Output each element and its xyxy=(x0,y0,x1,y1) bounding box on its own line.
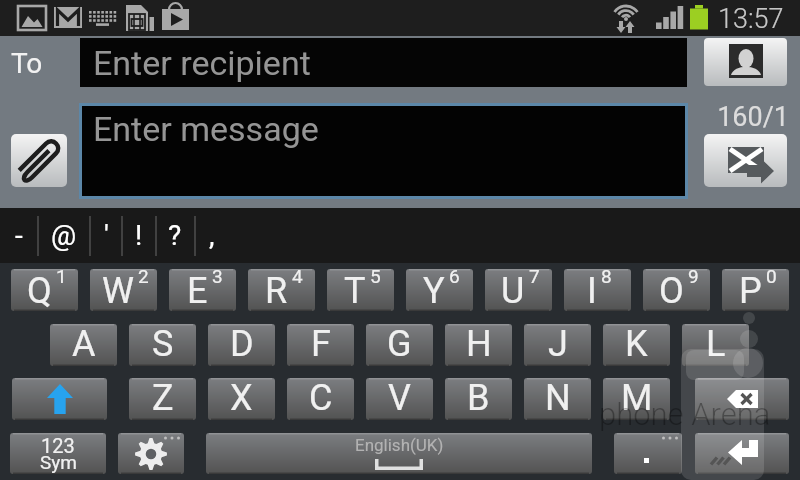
staticText: 0 xyxy=(766,269,777,287)
staticText: phone Arena xyxy=(599,396,771,432)
button[interactable]: Send message xyxy=(704,134,787,187)
button[interactable]: @ xyxy=(48,208,80,263)
button[interactable]: S xyxy=(129,324,196,366)
staticText: D xyxy=(230,324,254,365)
button[interactable]: Pick contact xyxy=(704,38,787,86)
staticText: 3 xyxy=(212,269,223,287)
staticText: 5 xyxy=(370,269,381,287)
staticText: W xyxy=(102,270,134,311)
staticText: P xyxy=(739,270,762,311)
staticText: Enter message xyxy=(93,109,319,149)
staticText: L xyxy=(706,324,726,365)
button[interactable]: W xyxy=(90,269,157,311)
button[interactable]: Z xyxy=(129,378,196,420)
staticText: 7 xyxy=(529,269,540,287)
staticText: Z xyxy=(152,378,174,419)
button[interactable]: Settings xyxy=(118,433,184,474)
staticText: U xyxy=(501,270,525,311)
button[interactable]: Backspace xyxy=(695,378,789,420)
button[interactable]: Attach xyxy=(11,134,67,187)
staticText: J xyxy=(548,324,568,365)
button[interactable]: A xyxy=(50,324,117,366)
staticText: B xyxy=(467,378,490,419)
staticText: R xyxy=(265,270,288,311)
staticText: ! xyxy=(135,219,143,252)
staticText: S xyxy=(152,324,174,365)
button[interactable]: J xyxy=(524,324,591,366)
button[interactable]: L xyxy=(682,324,749,366)
button[interactable]: R xyxy=(248,269,315,311)
staticText: 6 xyxy=(449,269,460,287)
staticText: 123 xyxy=(41,434,75,457)
button[interactable]: Symbols xyxy=(10,433,106,474)
staticText: ' xyxy=(104,219,109,252)
staticText: O xyxy=(659,270,684,311)
button[interactable]: Enter message xyxy=(82,106,685,196)
staticText: 8 xyxy=(601,269,612,287)
staticText: K xyxy=(625,324,648,365)
button[interactable]: K xyxy=(603,324,670,366)
staticText: English(UK) xyxy=(355,435,444,455)
button[interactable]: E xyxy=(169,269,236,311)
staticText: H xyxy=(466,324,492,365)
staticText: @ xyxy=(51,219,77,252)
staticText: Enter recipient xyxy=(93,43,311,83)
button[interactable]: U xyxy=(485,269,552,311)
staticText: E xyxy=(187,270,208,311)
staticText: M xyxy=(621,378,653,419)
staticText: I xyxy=(587,270,597,311)
staticText: Q xyxy=(27,270,52,311)
staticText: 4 xyxy=(292,269,303,287)
staticText: 13:57 xyxy=(718,3,784,35)
button[interactable]: H xyxy=(445,324,512,366)
button[interactable]: ' xyxy=(90,208,122,263)
button[interactable]: ! xyxy=(123,208,155,263)
button[interactable]: G xyxy=(366,324,433,366)
button[interactable]: B xyxy=(445,378,512,420)
button[interactable]: , xyxy=(196,208,228,263)
staticText: 9 xyxy=(688,269,699,287)
button[interactable]: I xyxy=(564,269,631,311)
button[interactable]: P xyxy=(722,269,789,311)
staticText: 1 xyxy=(56,269,67,287)
button[interactable]: - xyxy=(3,208,35,263)
button[interactable]: Enter xyxy=(695,433,789,474)
button[interactable]: Space xyxy=(206,433,592,474)
button[interactable]: Q xyxy=(11,269,78,311)
staticText: A xyxy=(72,324,96,365)
button[interactable]: V xyxy=(366,378,433,420)
staticText: X xyxy=(230,378,253,419)
staticText: N xyxy=(545,378,571,419)
button[interactable]: F xyxy=(287,324,354,366)
staticText: G xyxy=(387,324,412,365)
button[interactable]: Y xyxy=(406,269,473,311)
staticText: 160/1 xyxy=(690,101,789,133)
button[interactable]: Shift xyxy=(12,378,107,420)
button[interactable]: ? xyxy=(159,208,191,263)
staticText: C xyxy=(309,378,333,419)
button[interactable]: O xyxy=(643,269,710,311)
staticText: F xyxy=(311,324,331,365)
button[interactable]: Enter recipient xyxy=(80,38,687,87)
button[interactable]: C xyxy=(287,378,354,420)
staticText: 2 xyxy=(138,269,149,287)
staticText: , xyxy=(209,219,215,252)
staticText: To xyxy=(11,47,43,80)
button[interactable]: D xyxy=(208,324,275,366)
button[interactable]: T xyxy=(327,269,394,311)
staticText: V xyxy=(388,378,411,419)
staticText: T xyxy=(344,270,366,311)
button[interactable]: Period xyxy=(614,433,682,474)
button[interactable]: M xyxy=(603,378,670,420)
button[interactable]: N xyxy=(524,378,591,420)
staticText: Sym xyxy=(40,451,77,473)
staticText: ? xyxy=(168,219,182,252)
staticText: - xyxy=(15,219,23,252)
button[interactable]: X xyxy=(208,378,275,420)
staticText: Y xyxy=(423,270,445,311)
